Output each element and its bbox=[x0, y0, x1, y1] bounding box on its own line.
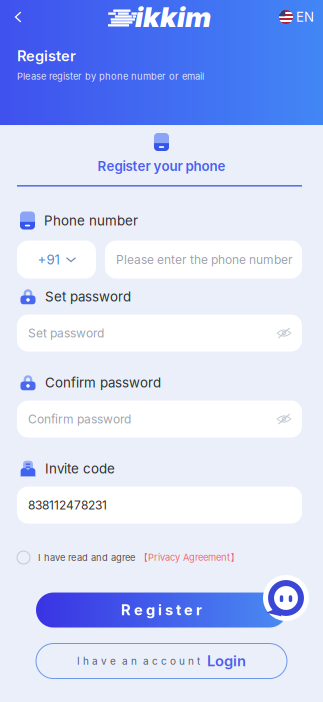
staticText: Register your phone bbox=[97, 158, 225, 174]
staticText: Invite code bbox=[45, 460, 115, 477]
staticText: I h a v e a n a c c o u n t bbox=[77, 655, 200, 667]
button[interactable]: Show password bbox=[277, 314, 302, 351]
staticText: R e g i s t e r bbox=[121, 601, 202, 619]
staticText: Register bbox=[17, 47, 76, 65]
button[interactable]: Customer support bbox=[263, 575, 309, 621]
staticText: Set password bbox=[28, 326, 104, 340]
staticText: Confirm password bbox=[45, 374, 161, 391]
button[interactable]: EN bbox=[279, 0, 323, 34]
staticText: EN bbox=[296, 9, 314, 25]
button[interactable]: I h a v e a n a c c o u n t bbox=[36, 643, 287, 678]
staticText: Confirm password bbox=[28, 412, 131, 426]
staticText: Set password bbox=[45, 288, 131, 305]
staticText: 838112478231 bbox=[28, 498, 107, 512]
staticText: 【Privacy Agreement】 bbox=[139, 552, 239, 563]
staticText: +91 bbox=[37, 251, 59, 268]
staticText: Please register by phone number or email bbox=[17, 71, 204, 82]
staticText: I have read and agree bbox=[38, 552, 135, 563]
button[interactable]: 【Privacy Agreement】 bbox=[139, 552, 239, 563]
staticText: Please enter the phone number bbox=[116, 252, 293, 267]
button[interactable]: R e g i s t e r bbox=[36, 592, 287, 627]
staticText: Login bbox=[207, 652, 246, 670]
staticText: ikkim bbox=[135, 0, 211, 34]
button[interactable]: Show password bbox=[277, 400, 302, 437]
button[interactable]: Agree to terms bbox=[17, 551, 30, 564]
staticText: Phone number bbox=[44, 212, 138, 229]
button[interactable]: +91 bbox=[17, 240, 96, 278]
button[interactable]: Back bbox=[0, 0, 38, 34]
